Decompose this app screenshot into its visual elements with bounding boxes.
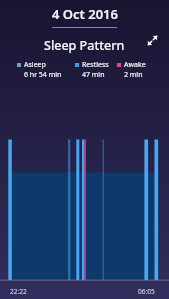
staticText: Restless (82, 60, 109, 70)
staticText: 6 hr 54 min (24, 70, 62, 80)
staticText: Awake (124, 60, 146, 70)
staticText: Asleep (24, 60, 46, 70)
button[interactable]: 4 Oct 2016 (0, 0, 169, 32)
staticText: 47 min (82, 70, 105, 80)
staticText: 2 min (124, 70, 143, 80)
staticText: 4 Oct 2016 (52, 5, 118, 23)
button[interactable] (146, 34, 159, 47)
staticText: Sleep Pattern (44, 37, 125, 54)
staticText: 22:22 (10, 287, 27, 296)
staticText: 06:05 (138, 287, 155, 296)
